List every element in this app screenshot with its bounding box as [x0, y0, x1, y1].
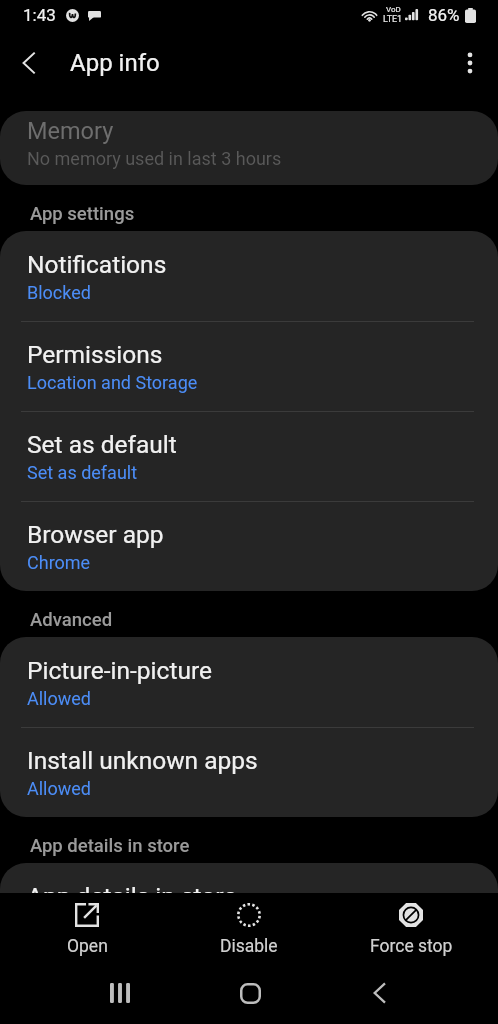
staticText: Disable: [220, 936, 278, 957]
button[interactable]: More options: [442, 35, 498, 91]
staticText: App details in store: [27, 882, 237, 911]
staticText: Set as default: [27, 462, 138, 483]
staticText: Notifications: [27, 250, 167, 279]
staticText: Allowed: [27, 688, 91, 709]
staticText: 86%: [428, 5, 460, 25]
button[interactable]: Home: [220, 963, 280, 1023]
staticText: Blocked: [27, 282, 91, 303]
staticText: VoD: [386, 5, 401, 14]
button[interactable]: Browser app: [0, 501, 498, 591]
staticText: Picture-in-picture: [27, 656, 212, 685]
button[interactable]: Navigate up: [0, 35, 56, 91]
staticText: LTE1: [383, 14, 403, 25]
staticText: Browser app: [27, 520, 164, 549]
staticText: 1:43: [23, 5, 56, 25]
button[interactable]: Picture-in-picture: [0, 637, 498, 727]
staticText: Location and Storage: [27, 372, 198, 393]
staticText: App settings: [30, 203, 135, 225]
staticText: Chrome: [27, 552, 91, 573]
staticText: App info: [70, 49, 160, 77]
staticText: App details in store: [30, 835, 190, 857]
staticText: Advanced: [30, 609, 113, 631]
button[interactable]: Memory: [0, 111, 498, 185]
staticText: Set as default: [27, 430, 177, 459]
staticText: Force stop: [370, 936, 453, 957]
button[interactable]: Recent apps: [90, 963, 150, 1023]
button[interactable]: Install unknown apps: [0, 727, 498, 817]
button[interactable]: Permissions: [0, 321, 498, 411]
staticText: Open: [67, 936, 108, 957]
button[interactable]: App details in store: [0, 863, 498, 953]
button[interactable]: Back: [349, 963, 409, 1023]
button[interactable]: Force stop: [330, 893, 492, 957]
staticText: No memory used in last 3 hours: [27, 148, 282, 169]
button[interactable]: Set as default: [0, 411, 498, 501]
button[interactable]: Open: [6, 893, 168, 957]
staticText: Permissions: [27, 340, 163, 369]
staticText: Allowed: [27, 778, 91, 799]
button[interactable]: Notifications: [0, 231, 498, 321]
button[interactable]: Disable: [168, 893, 330, 957]
staticText: Install unknown apps: [27, 746, 258, 775]
staticText: Memory: [27, 117, 114, 145]
